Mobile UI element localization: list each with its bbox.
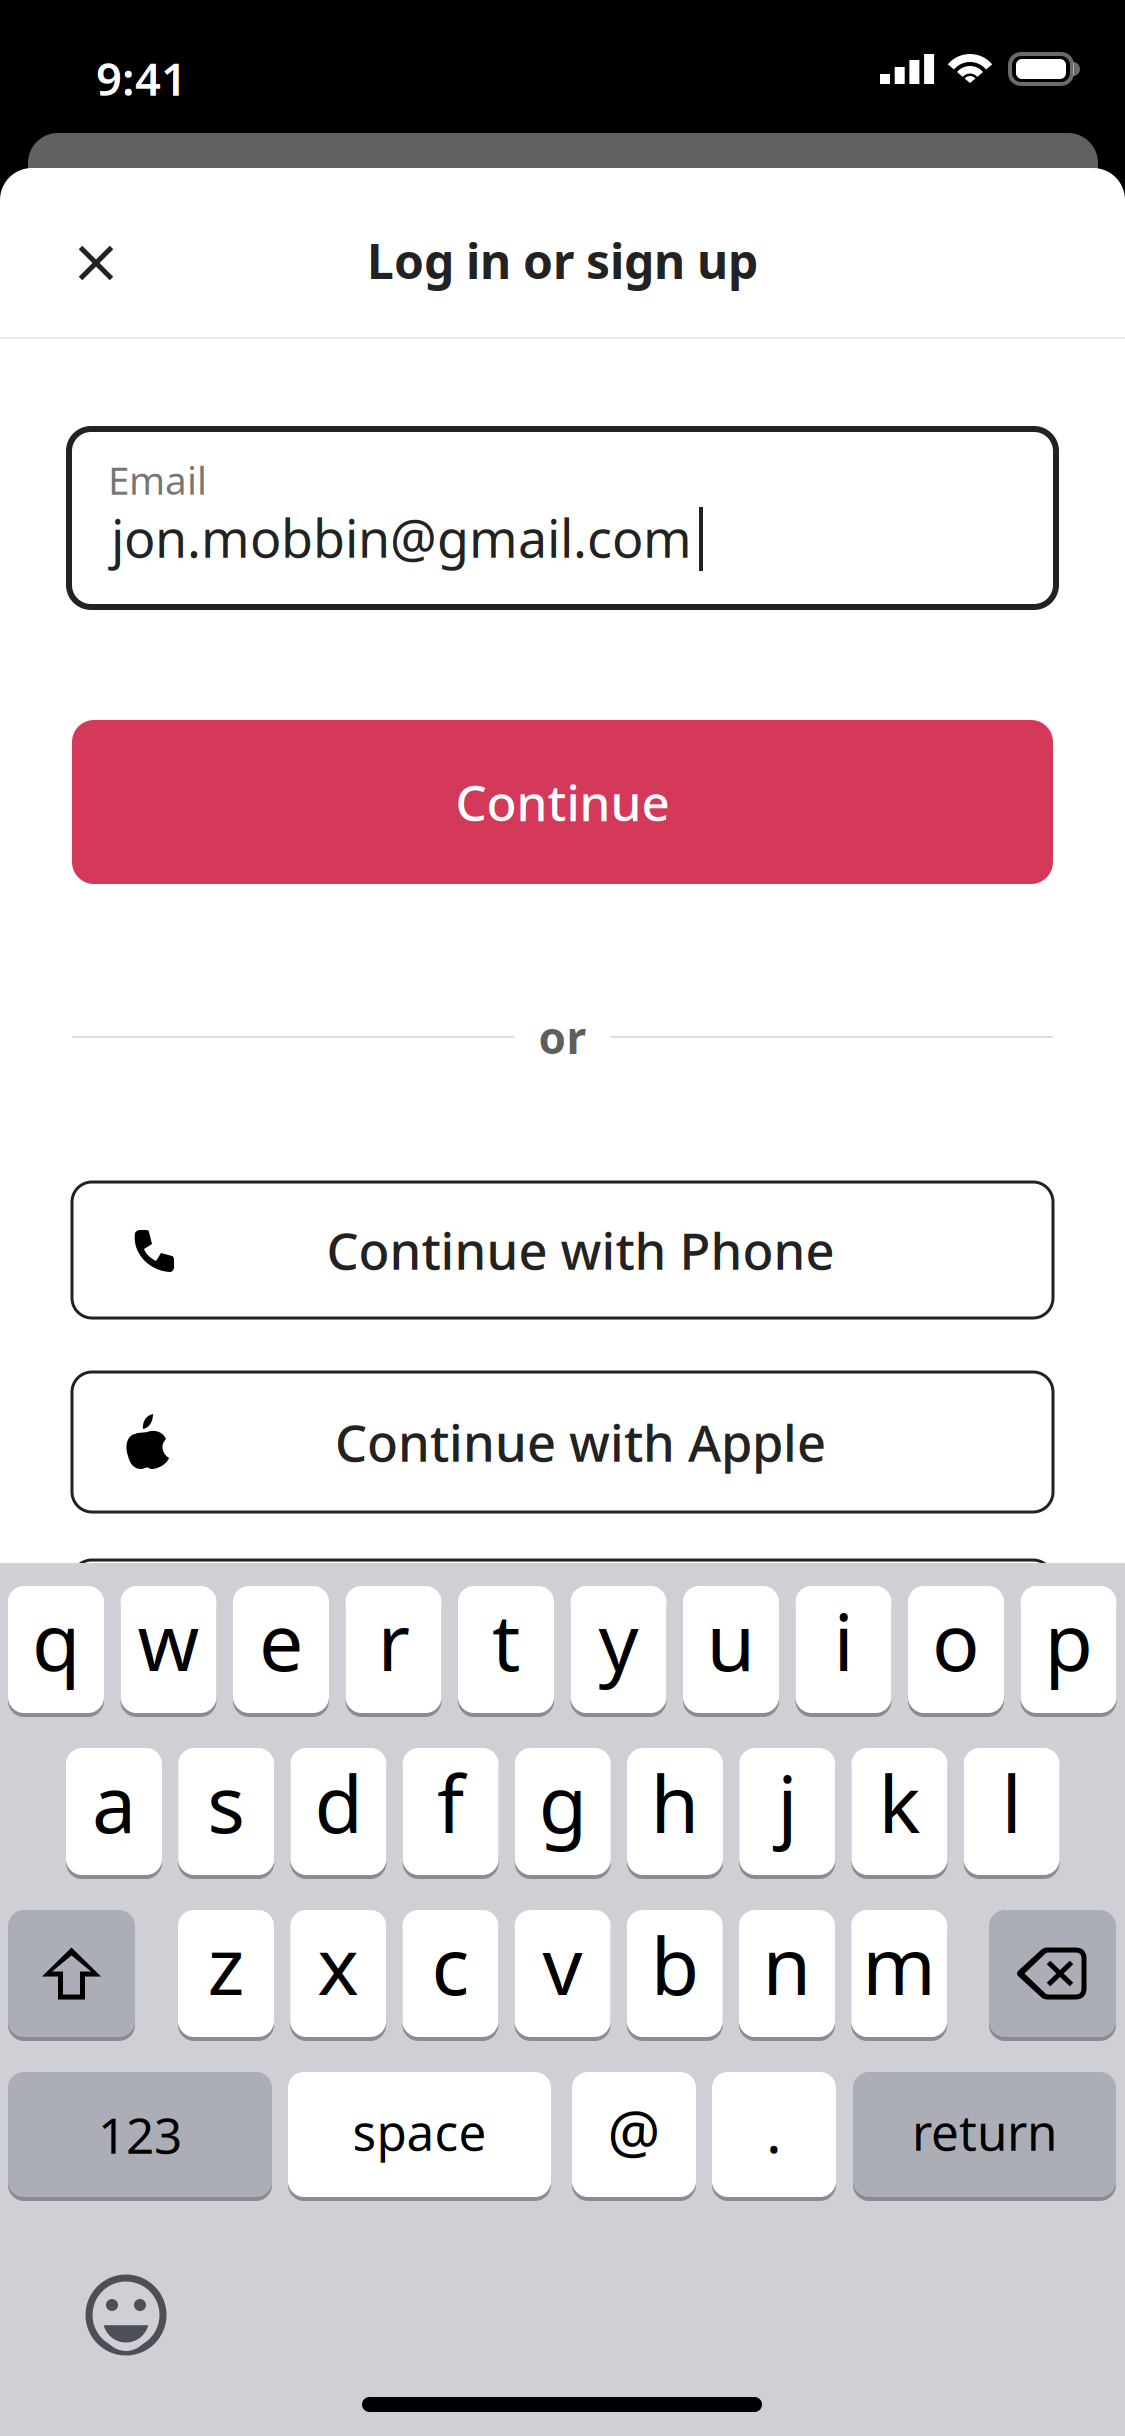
staticText: d (314, 1750, 362, 1855)
button[interactable]: i (795, 1586, 891, 1717)
staticText: w (137, 1588, 199, 1693)
staticText: or (538, 1008, 586, 1066)
button[interactable]: 123 (8, 2072, 272, 2201)
button[interactable]: Shift (8, 1910, 135, 2041)
button[interactable]: a (66, 1748, 162, 1879)
button[interactable]: t (458, 1586, 554, 1717)
button[interactable]: . (712, 2072, 836, 2201)
button[interactable]: space (288, 2072, 551, 2201)
staticText: h (650, 1750, 699, 1855)
staticText: q (32, 1588, 80, 1693)
staticText: r (377, 1588, 409, 1693)
button[interactable]: Continue with Phone (72, 1182, 1053, 1318)
staticText: Email (108, 454, 207, 505)
staticText: i (833, 1588, 853, 1693)
staticText: u (706, 1588, 755, 1693)
button[interactable]: r (345, 1586, 441, 1717)
button[interactable]: Emoji keyboard (81, 2270, 171, 2360)
staticText: Continue (455, 769, 669, 835)
staticText: Continue with Phone (326, 1216, 834, 1284)
staticText: g (539, 1750, 587, 1855)
staticText: z (207, 1912, 244, 2017)
button[interactable]: @ (572, 2072, 696, 2201)
button[interactable]: u (683, 1586, 779, 1717)
staticText: x (317, 1912, 359, 2017)
staticText: 9:41 (96, 48, 187, 108)
staticText: jon.mobbin@gmail.com (111, 503, 692, 572)
button[interactable]: Continue with Apple (72, 1372, 1053, 1512)
staticText: k (878, 1750, 920, 1855)
staticText: @ (607, 2091, 660, 2169)
button[interactable]: k (851, 1748, 947, 1879)
button[interactable]: o (908, 1586, 1004, 1717)
button[interactable]: v (515, 1910, 611, 2041)
staticText: a (92, 1750, 136, 1855)
button[interactable]: l (964, 1748, 1060, 1879)
button[interactable]: Close (48, 215, 144, 311)
staticText: l (1002, 1750, 1022, 1855)
staticText: c (431, 1912, 469, 2017)
button[interactable]: b (627, 1910, 723, 2041)
staticText: s (207, 1750, 245, 1855)
staticText: Continue with Apple (335, 1408, 826, 1476)
staticText: n (762, 1912, 811, 2017)
staticText: v (543, 1912, 583, 2017)
staticText: return (912, 2099, 1057, 2164)
button[interactable]: c (402, 1910, 498, 2041)
button[interactable]: return (853, 2072, 1116, 2201)
staticText: y (598, 1588, 638, 1693)
button[interactable]: q (8, 1586, 104, 1717)
button[interactable]: h (627, 1748, 723, 1879)
staticText: o (932, 1588, 980, 1693)
button[interactable]: s (178, 1748, 274, 1879)
button[interactable]: Delete (989, 1910, 1116, 2041)
staticText: m (862, 1912, 936, 2017)
staticText: 123 (98, 2102, 182, 2167)
staticText: t (492, 1588, 520, 1693)
staticText: p (1044, 1588, 1092, 1693)
button[interactable]: n (739, 1910, 835, 2041)
staticText: space (352, 2099, 486, 2164)
button[interactable]: f (403, 1748, 499, 1879)
button[interactable]: y (570, 1586, 666, 1717)
staticText: . (766, 2091, 782, 2169)
button[interactable]: j (739, 1748, 835, 1879)
button[interactable]: w (120, 1586, 216, 1717)
button[interactable]: e (233, 1586, 329, 1717)
staticText: e (259, 1588, 303, 1693)
button[interactable]: x (290, 1910, 386, 2041)
button[interactable]: Continue (72, 720, 1053, 884)
button[interactable]: p (1020, 1586, 1116, 1717)
button[interactable]: d (290, 1748, 386, 1879)
staticText: b (651, 1912, 699, 2017)
staticText: j (777, 1750, 797, 1855)
staticText: Log in or sign up (367, 229, 758, 292)
button[interactable]: g (515, 1748, 611, 1879)
button[interactable]: m (851, 1910, 947, 2041)
staticText: f (437, 1750, 464, 1855)
button[interactable]: z (178, 1910, 274, 2041)
